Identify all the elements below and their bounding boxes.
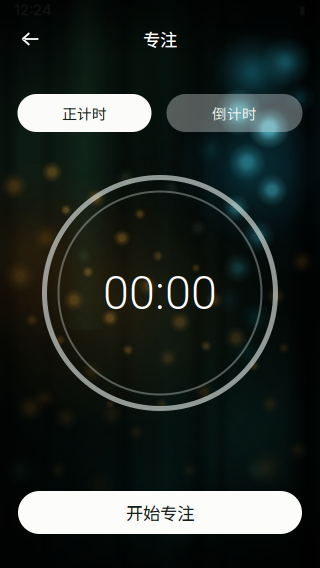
staticText: 12:24 bbox=[14, 1, 52, 19]
staticText: 00:00 bbox=[103, 266, 217, 320]
staticText: 正计时 bbox=[62, 102, 107, 124]
staticText: ▮ bbox=[299, 3, 306, 17]
button[interactable]: 倒计时 bbox=[166, 94, 302, 132]
staticText: 倒计时 bbox=[212, 102, 257, 124]
button[interactable]: 返回 bbox=[11, 20, 49, 58]
button[interactable]: 正计时 bbox=[17, 94, 151, 132]
staticText: 开始专注 bbox=[126, 500, 194, 525]
button[interactable]: 开始专注 bbox=[18, 491, 302, 534]
staticText: 专注 bbox=[143, 26, 177, 52]
